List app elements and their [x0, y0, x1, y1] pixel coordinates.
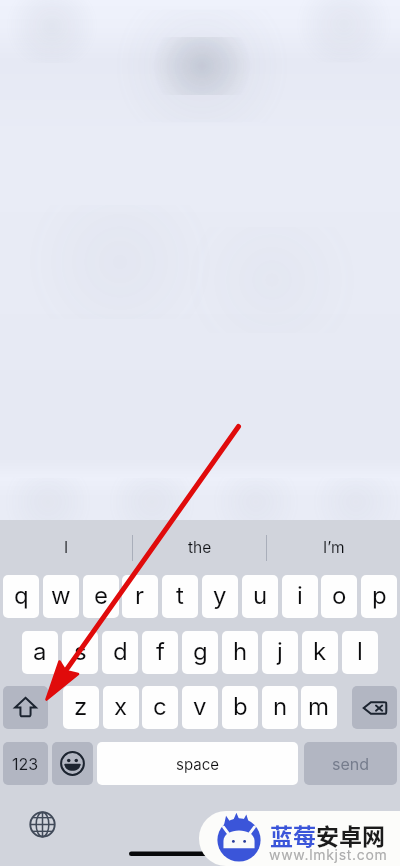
- staticText: l: [357, 637, 363, 666]
- staticText: r: [135, 581, 145, 610]
- staticText: the: [188, 538, 212, 557]
- button[interactable]: v: [182, 686, 218, 729]
- staticText: h: [233, 637, 248, 666]
- staticText: I: [64, 538, 69, 557]
- button[interactable]: b: [222, 686, 258, 729]
- button[interactable]: j: [262, 631, 298, 674]
- staticText: g: [193, 637, 208, 666]
- button[interactable]: g: [182, 631, 218, 674]
- button[interactable]: I: [0, 528, 132, 568]
- button[interactable]: n: [262, 686, 298, 729]
- button[interactable]: send: [304, 742, 397, 785]
- button[interactable]: t: [162, 575, 198, 618]
- button[interactable]: x: [103, 686, 139, 729]
- button[interactable]: a: [22, 631, 58, 674]
- staticText: send: [332, 754, 370, 773]
- button[interactable]: o: [321, 575, 357, 618]
- button[interactable]: w: [43, 575, 79, 618]
- button[interactable]: s: [62, 631, 98, 674]
- staticText: q: [14, 581, 29, 610]
- button[interactable]: r: [122, 575, 158, 618]
- button[interactable]: p: [361, 575, 397, 618]
- staticText: 123: [12, 754, 39, 773]
- staticText: 安卓网: [316, 818, 385, 851]
- button[interactable]: Change keyboard: [25, 807, 59, 841]
- staticText: p: [372, 581, 387, 610]
- staticText: k: [313, 637, 327, 666]
- staticText: n: [273, 692, 288, 721]
- staticText: w: [51, 581, 71, 610]
- button[interactable]: y: [202, 575, 238, 618]
- button[interactable]: the: [133, 528, 266, 568]
- button[interactable]: 123: [3, 742, 48, 785]
- button[interactable]: space: [97, 742, 298, 785]
- staticText: u: [253, 581, 268, 610]
- button[interactable]: i: [282, 575, 318, 618]
- button[interactable]: Emoji: [52, 742, 93, 785]
- staticText: t: [176, 581, 184, 610]
- button[interactable]: e: [83, 575, 119, 618]
- staticText: v: [193, 692, 207, 721]
- button[interactable]: f: [142, 631, 178, 674]
- button[interactable]: Backspace: [352, 686, 397, 729]
- staticText: d: [113, 637, 128, 666]
- button[interactable]: l: [342, 631, 378, 674]
- staticText: o: [332, 581, 347, 610]
- staticText: y: [213, 581, 227, 610]
- button[interactable]: u: [242, 575, 278, 618]
- staticText: x: [114, 692, 128, 721]
- staticText: s: [74, 637, 87, 666]
- button[interactable]: c: [142, 686, 178, 729]
- button[interactable]: z: [63, 686, 99, 729]
- staticText: space: [176, 755, 219, 773]
- staticText: f: [156, 637, 165, 666]
- staticText: z: [74, 692, 88, 721]
- button[interactable]: m: [301, 686, 337, 729]
- staticText: I’m: [323, 538, 345, 557]
- button[interactable]: q: [3, 575, 39, 618]
- staticText: e: [94, 581, 108, 610]
- staticText: b: [233, 692, 248, 721]
- staticText: m: [308, 692, 330, 721]
- button[interactable]: d: [102, 631, 138, 674]
- button[interactable]: Shift: [3, 686, 48, 729]
- button[interactable]: I’m: [267, 528, 400, 568]
- button[interactable]: h: [222, 631, 258, 674]
- staticText: i: [297, 581, 303, 610]
- staticText: j: [277, 637, 283, 666]
- staticText: 蓝莓: [270, 818, 316, 851]
- staticText: a: [33, 637, 47, 666]
- staticText: c: [153, 692, 167, 721]
- staticText: www.lmkjst.com: [269, 846, 388, 863]
- button[interactable]: k: [302, 631, 338, 674]
